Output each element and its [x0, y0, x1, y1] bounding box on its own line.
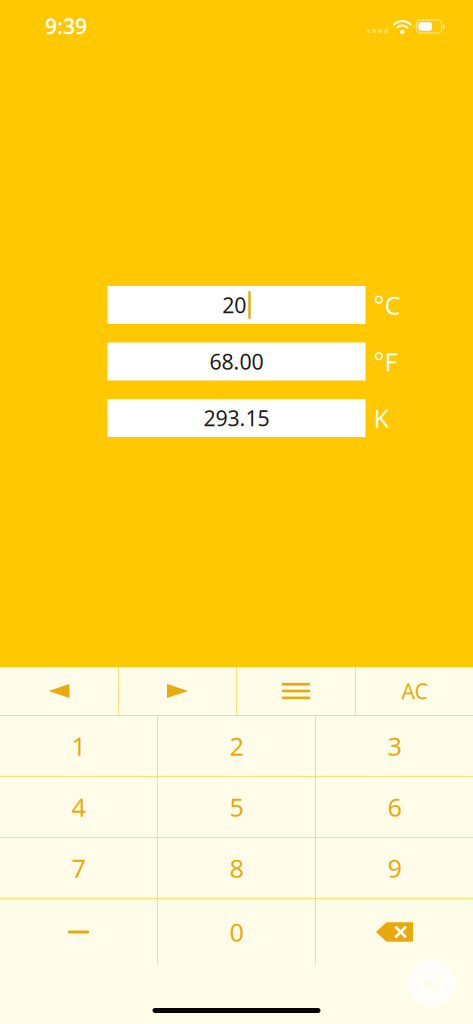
staticText: 0: [229, 915, 243, 949]
button[interactable]: 293.15: [107, 399, 365, 437]
staticText: 4: [71, 790, 85, 824]
button[interactable]: Menu: [237, 667, 355, 715]
staticText: 7: [71, 851, 85, 885]
button[interactable]: 5: [158, 777, 315, 837]
staticText: 9:39: [45, 12, 87, 40]
staticText: AC: [401, 677, 427, 705]
staticText: 6: [387, 790, 401, 824]
staticText: 9: [387, 851, 401, 885]
button[interactable]: Previous field: [0, 667, 118, 715]
staticText: °F: [373, 345, 397, 378]
button[interactable]: 68.00: [107, 342, 365, 380]
button[interactable]: 7: [0, 838, 157, 898]
staticText: 68.00: [209, 347, 263, 376]
button[interactable]: AC: [356, 667, 473, 715]
button[interactable]: 6: [316, 777, 473, 837]
button[interactable]: Delete: [316, 899, 473, 965]
staticText: 20: [222, 291, 246, 319]
button[interactable]: 4: [0, 777, 157, 837]
button[interactable]: Next field: [119, 667, 236, 715]
button[interactable]: 2: [158, 716, 315, 776]
staticText: 293.15: [203, 404, 269, 432]
button[interactable]: 3: [316, 716, 473, 776]
button[interactable]: 1: [0, 716, 157, 776]
staticText: 5: [229, 790, 243, 824]
button[interactable]: 8: [158, 838, 315, 898]
button[interactable]: 20: [107, 286, 365, 324]
button[interactable]: Minus: [0, 899, 157, 965]
staticText: 2: [229, 729, 243, 763]
staticText: K: [373, 401, 389, 435]
button[interactable]: 9: [316, 838, 473, 898]
button[interactable]: 0: [158, 899, 315, 965]
staticText: 3: [387, 729, 401, 763]
staticText: 1: [71, 729, 85, 763]
staticText: 8: [229, 851, 243, 885]
staticText: °C: [373, 288, 400, 322]
